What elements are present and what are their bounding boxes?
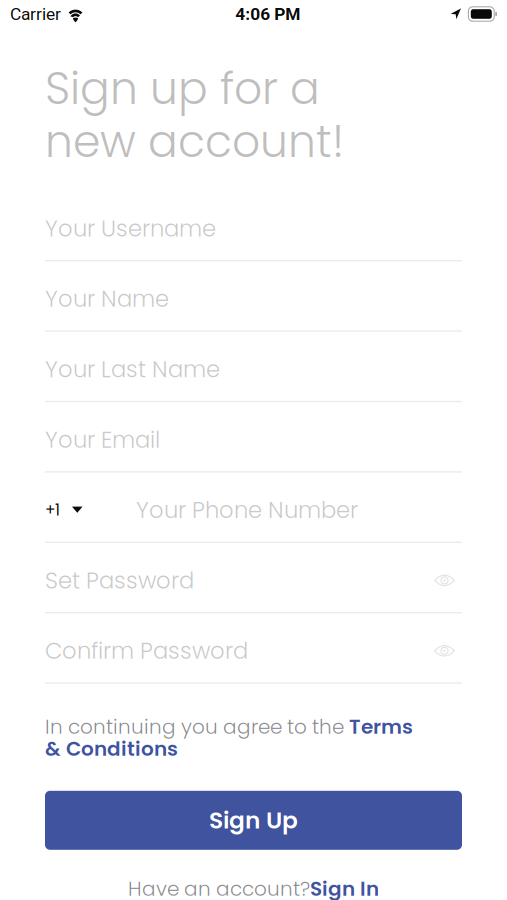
- staticText: Sign Up: [209, 804, 298, 837]
- staticText: Sign In: [310, 875, 379, 900]
- staticText: Your Username: [45, 213, 216, 244]
- staticText: Sign up for a: [45, 58, 320, 119]
- button[interactable]: Show Confirm Password: [427, 631, 462, 671]
- staticText: Your Email: [45, 424, 160, 455]
- staticText: Your Phone Number: [136, 494, 358, 526]
- button[interactable]: Sign In: [310, 875, 379, 900]
- staticText: Your Last Name: [45, 353, 220, 385]
- button[interactable]: Sign Up: [45, 791, 462, 850]
- button[interactable]: Country code, plus 1: [45, 485, 83, 535]
- staticText: In continuing you agree to the: [45, 713, 349, 741]
- button[interactable]: & Conditions: [45, 738, 178, 760]
- staticText: & Conditions: [45, 735, 178, 763]
- staticText: new account!: [45, 111, 344, 172]
- staticText: Confirm Password: [45, 635, 248, 667]
- staticText: Have an account?: [128, 875, 310, 900]
- staticText: Your Name: [45, 283, 169, 315]
- staticText: Carrier: [10, 4, 61, 24]
- staticText: Set Password: [45, 565, 194, 596]
- staticText: 4:06 PM: [235, 4, 300, 24]
- staticText: +1: [45, 499, 60, 521]
- staticText: Terms: [349, 713, 413, 741]
- button[interactable]: Show Set Password: [427, 560, 462, 600]
- button[interactable]: Terms: [349, 713, 413, 741]
